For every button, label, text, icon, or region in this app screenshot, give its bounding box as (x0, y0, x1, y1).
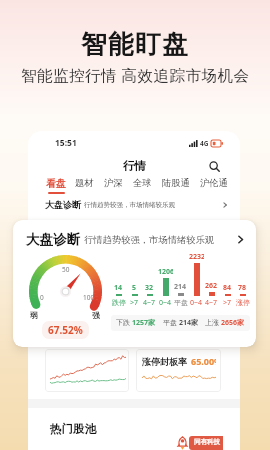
staticText: 4~7 (143, 298, 156, 308)
staticText: 32 (145, 283, 154, 293)
staticText: 跌停 (112, 298, 126, 307)
staticText: 涨停封板率 (142, 356, 187, 367)
staticText: 上涨 (205, 318, 221, 328)
staticText: 弱 (30, 311, 38, 320)
staticText: 陆股通 (162, 177, 190, 189)
staticText: 全球 (133, 177, 152, 189)
staticText: 热门股池 (50, 422, 96, 436)
staticText: 4G (200, 139, 209, 148)
staticText: 行情 (123, 159, 146, 173)
staticText: 100 (83, 293, 95, 302)
staticText: 0 (40, 293, 44, 302)
staticText: 78 (238, 283, 247, 293)
staticText: 智能盯盘 (81, 28, 190, 60)
staticText: 沪深 (104, 177, 123, 189)
staticText: 下跌 (116, 318, 132, 328)
button[interactable]: Search (207, 159, 222, 174)
staticText: 84 (223, 283, 232, 293)
button[interactable]: Index trend chart (45, 349, 129, 392)
button[interactable]: 全球 (133, 177, 152, 189)
staticText: 4~7 (205, 298, 218, 308)
staticText: 看盘 (46, 177, 66, 190)
staticText: 平盘 (174, 298, 188, 307)
staticText: 214 (174, 282, 187, 292)
staticText: 大盘诊断 (26, 231, 80, 248)
staticText: 涨停 (236, 298, 250, 307)
staticText: 大盘诊断 (45, 199, 81, 210)
staticText: 2232 (189, 252, 204, 262)
button[interactable]: 陆股通 (162, 177, 190, 189)
staticText: 262 (205, 281, 218, 291)
staticText: >7 (130, 298, 139, 308)
staticText: 行情趋势较强，市场情绪较乐观 (84, 234, 215, 246)
button[interactable]: Hot stock rocket (176, 436, 223, 450)
button[interactable]: 沪深 (104, 177, 123, 189)
staticText: 同有科技 (194, 438, 220, 446)
staticText: 5 (132, 283, 137, 293)
button[interactable]: 题材 (75, 177, 94, 189)
staticText: 强 (92, 311, 100, 320)
staticText: 65.00% (191, 355, 216, 367)
button[interactable]: 沪伦通 (200, 177, 228, 189)
staticText: 14 (114, 283, 123, 293)
staticText: >7 (223, 298, 232, 308)
staticText: 15:51 (55, 137, 77, 149)
staticText: 平盘 (163, 318, 179, 328)
staticText: 67.52% (48, 323, 83, 337)
staticText: 1257家 (132, 318, 156, 328)
staticText: 0~4 (190, 298, 203, 308)
staticText: 沪伦通 (200, 177, 228, 189)
button[interactable]: 看盘 (46, 177, 66, 194)
button[interactable]: 涨停封板率 (136, 349, 221, 392)
button[interactable]: 大盘诊断 (28, 199, 240, 210)
staticText: 214家 (179, 318, 199, 328)
staticText: 行情趋势较强，市场情绪较乐观 (84, 201, 175, 209)
staticText: 1206 (158, 267, 173, 277)
button[interactable]: 大盘诊断 (13, 220, 256, 250)
staticText: 50 (62, 265, 70, 274)
staticText: 智能监控行情 高效追踪市场机会 (21, 64, 250, 85)
staticText: 0~4 (159, 298, 172, 308)
staticText: 2656家 (221, 318, 245, 328)
staticText: 题材 (75, 177, 94, 189)
